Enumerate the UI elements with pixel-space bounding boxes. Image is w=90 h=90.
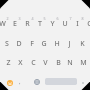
button[interactable]: C [27, 58, 39, 72]
staticText: 3 [18, 16, 21, 21]
staticText: F [30, 39, 34, 49]
button[interactable]: Emoji [4, 77, 15, 88]
button[interactable]: Comma [14, 76, 25, 87]
staticText: 4 [31, 16, 34, 21]
staticText: E [13, 19, 17, 29]
button[interactable]: F [26, 39, 38, 53]
staticText: O [87, 19, 90, 29]
button[interactable]: O [84, 19, 90, 33]
staticText: N [67, 58, 73, 68]
button[interactable]: E [9, 19, 21, 33]
button[interactable]: I [71, 19, 83, 33]
button[interactable]: S [1, 39, 13, 53]
staticText: Z [6, 58, 11, 68]
staticText: 7 [69, 16, 72, 21]
staticText: M [80, 58, 87, 68]
staticText: H [54, 39, 60, 49]
staticText: 5 [43, 16, 46, 21]
button[interactable]: K [76, 39, 88, 53]
staticText: 6 [56, 16, 59, 21]
button[interactable]: D [13, 39, 25, 53]
button[interactable]: U [59, 19, 71, 33]
staticText: 2 [6, 16, 9, 21]
button[interactable]: T [34, 19, 46, 33]
staticText: G [41, 39, 47, 49]
staticText: J [68, 39, 71, 49]
staticText: C [31, 58, 36, 68]
staticText: R [25, 19, 30, 29]
button[interactable]: Period [77, 77, 88, 88]
button[interactable]: G [38, 39, 50, 53]
staticText: D [16, 39, 22, 49]
button[interactable]: X [14, 58, 26, 72]
button[interactable]: V [39, 58, 51, 72]
button[interactable]: H [51, 39, 63, 53]
staticText: W [0, 19, 6, 29]
staticText: K [80, 39, 85, 49]
staticText: S [5, 39, 9, 49]
staticText: V [43, 58, 48, 68]
button[interactable]: Z [2, 58, 14, 72]
button[interactable]: W [0, 19, 8, 33]
staticText: T [38, 19, 42, 29]
staticText: U [62, 19, 68, 29]
button[interactable]: Y [46, 19, 58, 33]
staticText: , [19, 78, 21, 86]
button[interactable]: M [77, 58, 89, 72]
staticText: X [18, 58, 23, 68]
staticText: 8 [81, 16, 84, 21]
staticText: I [76, 19, 79, 29]
button[interactable]: B [52, 58, 64, 72]
button[interactable]: R [21, 19, 33, 33]
button[interactable]: J [63, 39, 75, 53]
staticText: B [56, 58, 61, 68]
button[interactable]: Change language [31, 76, 42, 87]
button[interactable]: N [64, 58, 76, 72]
staticText: Y [50, 19, 55, 29]
